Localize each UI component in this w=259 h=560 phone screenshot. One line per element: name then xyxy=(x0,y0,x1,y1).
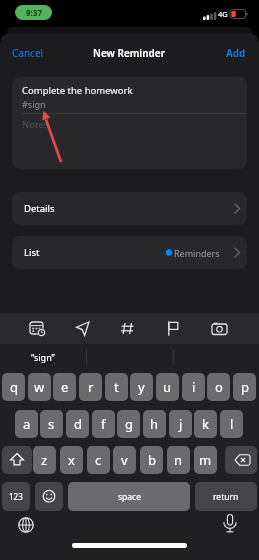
button[interactable]: t xyxy=(105,373,128,401)
staticText: Details xyxy=(24,202,55,215)
button[interactable]: b xyxy=(140,446,163,474)
staticText: m xyxy=(199,451,212,469)
staticText: l xyxy=(230,415,234,433)
staticText: Cancel xyxy=(12,46,44,60)
button[interactable] xyxy=(2,446,32,474)
staticText: “sign” xyxy=(31,351,55,363)
staticText: space xyxy=(118,491,141,503)
button[interactable] xyxy=(72,317,94,340)
staticText: return xyxy=(213,491,239,503)
button[interactable]: i xyxy=(182,373,205,401)
button[interactable]: Cancel xyxy=(12,46,44,60)
button[interactable] xyxy=(218,511,242,537)
staticText: h xyxy=(150,415,159,433)
staticText: r xyxy=(88,378,94,396)
button[interactable]: l xyxy=(220,410,243,438)
button[interactable]: j xyxy=(169,410,192,438)
button[interactable]: a xyxy=(15,410,38,438)
staticText: j xyxy=(179,415,183,433)
button[interactable]: z xyxy=(33,446,56,474)
button[interactable]: List xyxy=(12,236,247,269)
button[interactable]: Complete the homework xyxy=(12,77,247,169)
button[interactable] xyxy=(225,446,257,474)
button[interactable]: c xyxy=(87,446,110,474)
button[interactable] xyxy=(0,344,86,371)
staticText: Add xyxy=(226,46,246,60)
staticText: q xyxy=(10,378,18,396)
staticText: p xyxy=(241,378,249,396)
staticText: b xyxy=(148,451,156,469)
staticText: Notes xyxy=(22,118,49,131)
button[interactable] xyxy=(14,513,38,537)
staticText: Reminders xyxy=(174,247,220,259)
button[interactable]: o xyxy=(207,373,230,401)
staticText: t xyxy=(114,378,119,396)
button[interactable]: y xyxy=(130,373,153,401)
button[interactable]: v xyxy=(113,446,136,474)
staticText: k xyxy=(202,415,209,433)
button[interactable] xyxy=(208,317,231,340)
button[interactable]: n xyxy=(167,446,190,474)
staticText: u xyxy=(163,378,172,396)
button[interactable]: q xyxy=(2,373,25,401)
button[interactable]: g xyxy=(117,410,140,438)
button[interactable]: w xyxy=(28,373,51,401)
staticText: a xyxy=(23,415,31,433)
button[interactable]: m xyxy=(194,446,217,474)
staticText: 123 xyxy=(9,491,23,502)
staticText: 9:37 xyxy=(26,7,42,18)
staticText: d xyxy=(74,415,82,433)
staticText: s xyxy=(48,415,55,433)
button[interactable]: Add xyxy=(226,46,246,60)
staticText: x xyxy=(68,451,75,469)
button[interactable]: k xyxy=(194,410,217,438)
staticText: n xyxy=(174,451,183,469)
staticText: #sign xyxy=(22,98,46,110)
button[interactable] xyxy=(117,317,139,340)
button[interactable]: h xyxy=(143,410,166,438)
staticText: i xyxy=(192,378,196,396)
staticText: w xyxy=(34,378,45,396)
button[interactable]: f xyxy=(92,410,115,438)
staticText: z xyxy=(41,451,48,469)
button[interactable] xyxy=(162,317,184,340)
staticText: g xyxy=(125,415,133,433)
button[interactable]: d xyxy=(66,410,89,438)
button[interactable]: space xyxy=(68,482,190,511)
staticText: v xyxy=(121,451,128,469)
button[interactable]: r xyxy=(79,373,102,401)
staticText: e xyxy=(61,378,69,396)
button[interactable]: 123 xyxy=(2,482,30,511)
button[interactable]: u xyxy=(156,373,179,401)
staticText: New Reminder xyxy=(93,46,166,60)
button[interactable]: 9:37 xyxy=(15,5,52,20)
button[interactable]: e xyxy=(53,373,76,401)
button[interactable] xyxy=(26,317,48,340)
staticText: List xyxy=(24,246,40,259)
button[interactable] xyxy=(35,482,63,511)
button[interactable]: x xyxy=(60,446,83,474)
button[interactable]: s xyxy=(40,410,63,438)
staticText: Complete the homework xyxy=(22,84,133,97)
button[interactable]: return xyxy=(195,482,257,511)
staticText: y xyxy=(138,378,145,396)
staticText: o xyxy=(215,378,223,396)
staticText: 4G xyxy=(218,9,228,19)
button[interactable]: Details xyxy=(12,192,247,225)
staticText: c xyxy=(95,451,102,469)
staticText: f xyxy=(101,415,106,433)
button[interactable]: p xyxy=(233,373,256,401)
